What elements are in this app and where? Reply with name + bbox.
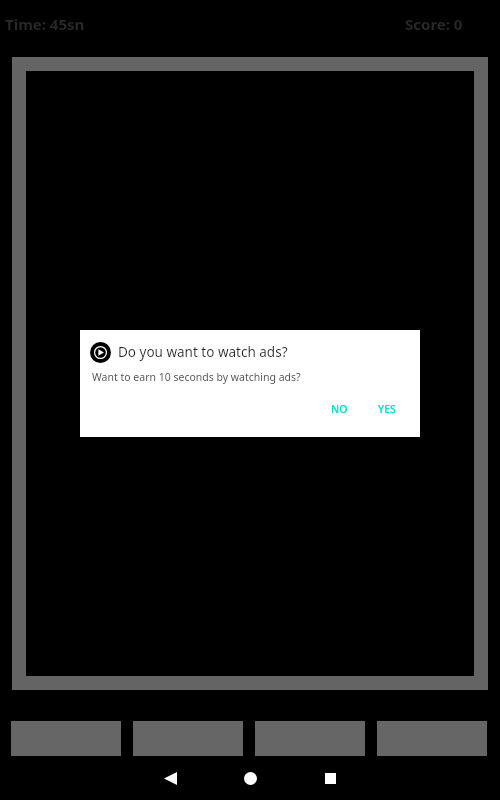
button[interactable]: Home — [236, 764, 264, 792]
button[interactable]: Back — [156, 764, 184, 792]
button[interactable]: NO — [325, 396, 354, 422]
staticText: Time: 45sn — [5, 14, 85, 34]
button[interactable]: YES — [372, 396, 402, 422]
staticText: NO — [331, 402, 348, 416]
button[interactable]: Recent apps — [316, 764, 344, 792]
staticText: Want to earn 10 seconds by watching ads? — [92, 370, 301, 384]
staticText: YES — [378, 402, 396, 416]
staticText: Score: 0 — [405, 14, 463, 34]
staticText: Do you want to watch ads? — [118, 343, 288, 361]
